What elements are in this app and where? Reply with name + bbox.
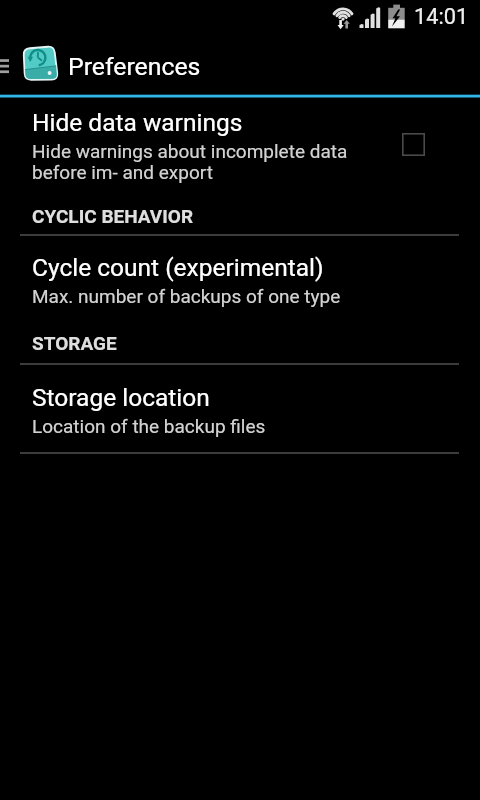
staticText: Cycle count (experimental) [32, 253, 324, 282]
button[interactable]: Hide data warnings checkbox [402, 133, 425, 156]
staticText: 14:01 [414, 4, 469, 30]
staticText: STORAGE [32, 332, 117, 354]
staticText: Hide warnings about incomplete data befo… [32, 140, 372, 184]
button[interactable]: Cycle count (experimental) [0, 236, 480, 312]
staticText: Max. number of backups of one type [32, 285, 341, 307]
button[interactable]: Menu [0, 56, 10, 76]
button[interactable] [0, 34, 480, 94]
staticText: Hide data warnings [32, 108, 243, 137]
staticText: Location of the backup files [32, 415, 266, 437]
button[interactable]: Hide data warnings [0, 99, 480, 195]
button[interactable]: Storage location [0, 365, 480, 451]
staticText: Storage location [32, 383, 210, 412]
staticText: Preferences [68, 52, 201, 81]
staticText: CYCLIC BEHAVIOR [32, 205, 194, 227]
